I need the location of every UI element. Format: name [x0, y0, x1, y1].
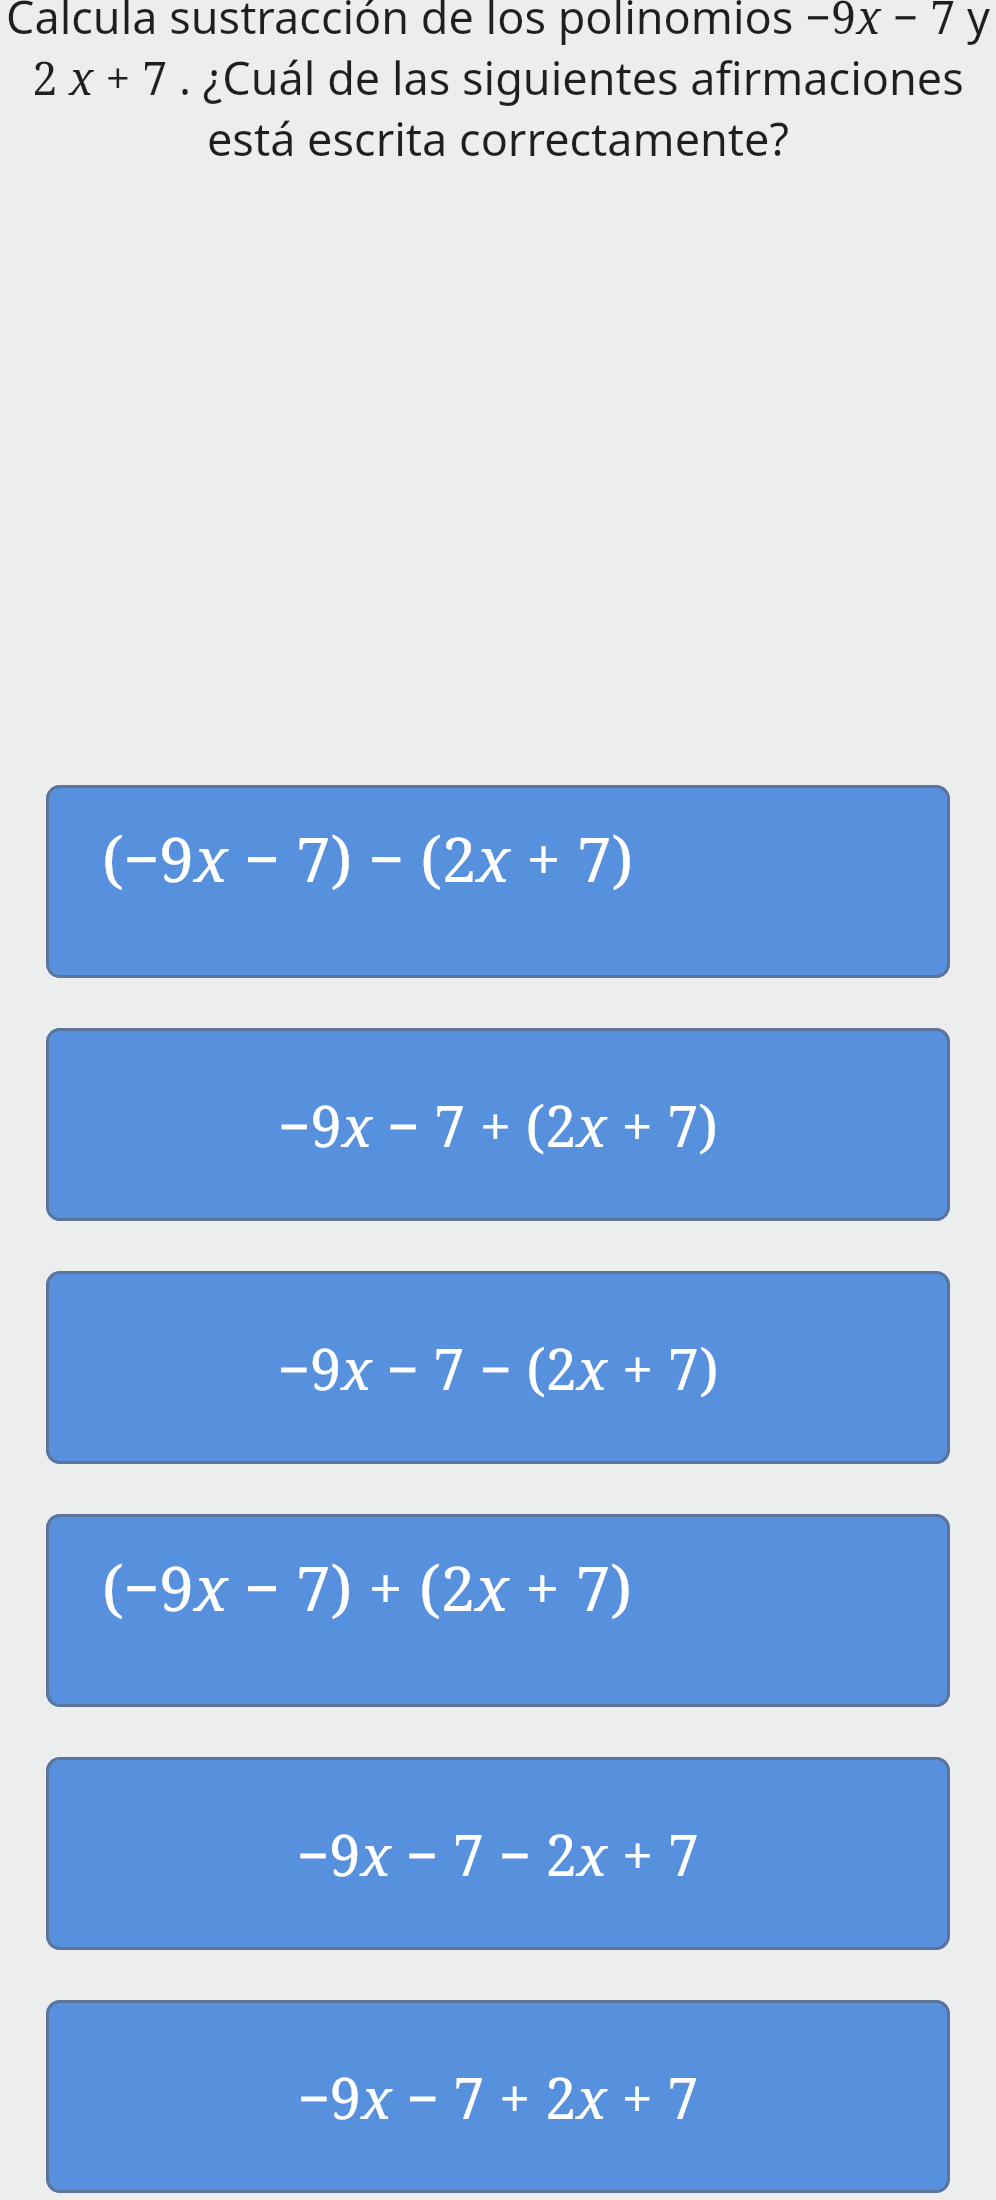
button[interactable]: −9x − 7 − 2x + 7: [46, 1757, 950, 1950]
staticText: −9x − 7 − (2x + 7): [46, 1330, 950, 1406]
staticText: −9x − 7 − 2x + 7: [46, 1816, 950, 1892]
staticText: (−9x − 7) − (2x + 7): [102, 816, 950, 900]
button[interactable]: (−9x − 7) + (2x + 7): [46, 1514, 950, 1707]
staticText: (−9x − 7) + (2x + 7): [102, 1545, 950, 1629]
button[interactable]: −9x − 7 − (2x + 7): [46, 1271, 950, 1464]
staticText: Calcula sustracción de los polinomios −9…: [4, 0, 992, 169]
button[interactable]: −9x − 7 + (2x + 7): [46, 1028, 950, 1221]
staticText: −9x − 7 + (2x + 7): [46, 1087, 950, 1163]
button[interactable]: (−9x − 7) − (2x + 7): [46, 785, 950, 978]
staticText: −9x − 7 + 2x + 7: [46, 2059, 950, 2135]
button[interactable]: −9x − 7 + 2x + 7: [46, 2000, 950, 2193]
